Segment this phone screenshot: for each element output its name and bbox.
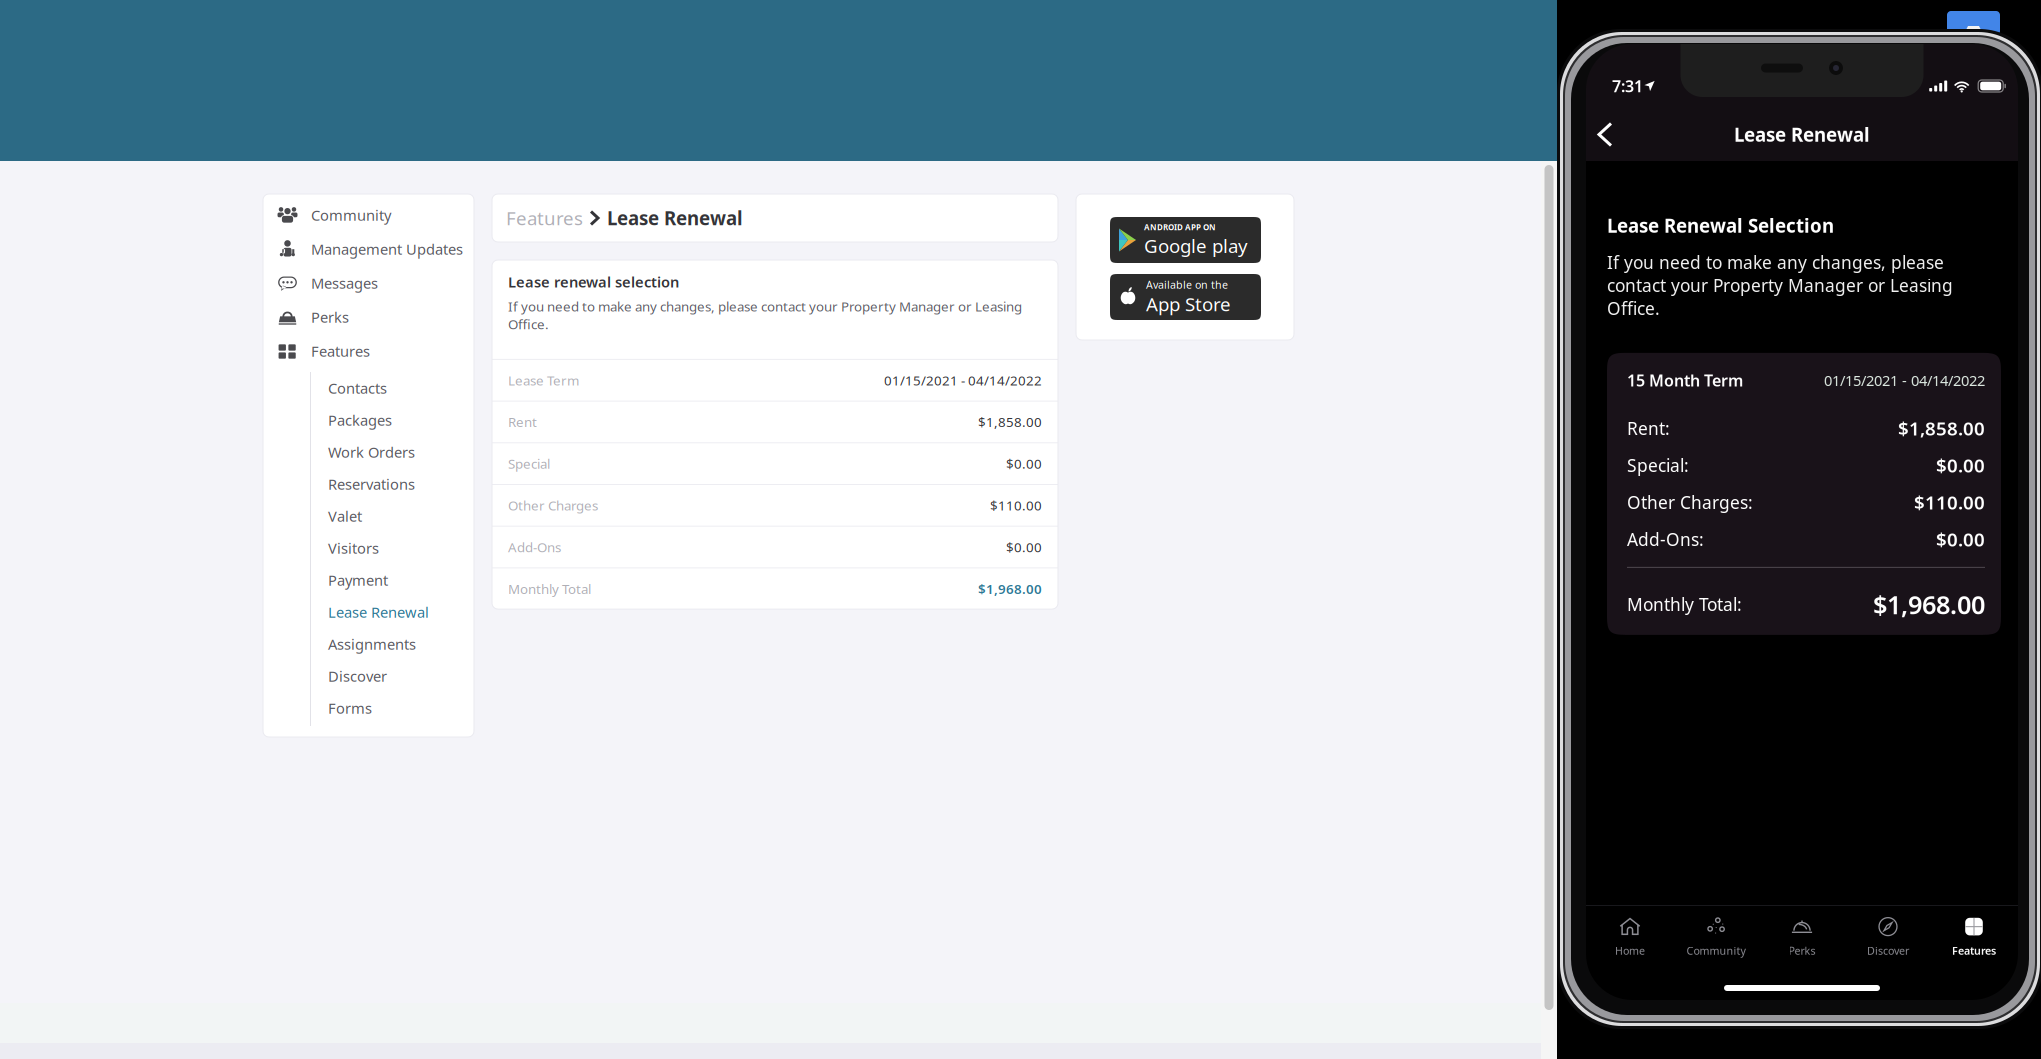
button[interactable]: Back [1586, 108, 1630, 161]
button[interactable]: Community [263, 198, 474, 232]
staticText: Lease Term [508, 371, 579, 389]
staticText: Add-Ons: [1627, 528, 1704, 551]
button[interactable]: Visitors [311, 532, 474, 564]
staticText: 7:31 [1612, 75, 1643, 97]
staticText: Lease Renewal Selection [1607, 213, 1834, 238]
staticText: Lease Renewal [328, 602, 429, 622]
staticText: Add-Ons [508, 538, 561, 556]
button[interactable]: Features [263, 334, 474, 368]
staticText: Features [311, 341, 370, 361]
staticText: ANDROID APP ON [1144, 222, 1216, 232]
button[interactable]: Perks [1759, 914, 1845, 960]
button[interactable]: Features [1931, 914, 2017, 960]
button[interactable]: Forms [311, 692, 474, 724]
staticText: Google play [1144, 233, 1248, 258]
staticText: Forms [328, 698, 372, 718]
staticText: $0.00 [1936, 527, 1985, 552]
staticText: Community [1686, 944, 1745, 958]
staticText: Monthly Total: [1627, 593, 1742, 616]
staticText: $110.00 [990, 496, 1042, 514]
staticText: Monthly Total [508, 580, 591, 598]
button[interactable]: Community [1673, 914, 1759, 960]
staticText: If you need to make any changes, please … [1607, 251, 1953, 320]
staticText: Contacts [328, 378, 387, 398]
button[interactable]: Perks [263, 300, 474, 334]
staticText: Special [508, 455, 550, 472]
button[interactable]: Messages [263, 266, 474, 300]
button[interactable]: Management Updates [263, 232, 474, 266]
staticText: Available on the [1146, 277, 1228, 292]
staticText: Assignments [328, 634, 416, 654]
staticText: $1,968.00 [978, 580, 1042, 598]
staticText: $110.00 [1914, 490, 1985, 515]
staticText: Valet [328, 506, 362, 526]
staticText: Special: [1627, 454, 1689, 477]
button[interactable]: Valet [311, 500, 474, 532]
staticText: If you need to make any changes, please … [508, 297, 1022, 333]
staticText: Lease Renewal [1734, 122, 1870, 147]
button[interactable]: Reservations [311, 468, 474, 500]
button[interactable]: Lease Renewal [311, 596, 474, 628]
staticText: Lease renewal selection [508, 272, 679, 291]
staticText: Payment [328, 570, 388, 590]
staticText: 01/15/2021 - 04/14/2022 [1824, 371, 1985, 390]
staticText: Community [311, 205, 391, 225]
button[interactable]: Work Orders [311, 436, 474, 468]
staticText: Lease Renewal [607, 206, 743, 230]
button[interactable]: Discover [1845, 914, 1931, 960]
button[interactable]: Payment [311, 564, 474, 596]
staticText: Perks [311, 307, 349, 327]
staticText: Home [1615, 944, 1645, 958]
button[interactable]: Home [1587, 914, 1673, 960]
staticText: 15 Month Term [1627, 370, 1743, 391]
button[interactable]: ANDROID APP ON [1110, 217, 1261, 263]
staticText: Messages [311, 273, 378, 293]
staticText: $1,858.00 [1898, 416, 1985, 441]
staticText: Reservations [328, 474, 415, 494]
staticText: Other Charges [508, 496, 598, 514]
staticText: $1,968.00 [1873, 587, 1985, 621]
button[interactable]: Features [506, 206, 583, 230]
staticText: Other Charges: [1627, 491, 1753, 514]
staticText: Discover [1867, 944, 1909, 958]
staticText: $0.00 [1006, 455, 1042, 472]
button[interactable]: Packages [311, 404, 474, 436]
staticText: Packages [328, 410, 392, 430]
staticText: Perks [1788, 944, 1815, 958]
staticText: Discover [328, 666, 387, 686]
button[interactable]: Discover [311, 660, 474, 692]
staticText: Rent: [1627, 417, 1670, 440]
staticText: Features [1952, 944, 1996, 958]
staticText: 01/15/2021 - 04/14/2022 [884, 371, 1042, 389]
staticText: $0.00 [1006, 538, 1042, 556]
staticText: $0.00 [1936, 453, 1985, 478]
staticText: App Store [1146, 292, 1231, 316]
button[interactable]: Available on the [1110, 274, 1261, 320]
button[interactable]: Contacts [311, 372, 474, 404]
staticText: Visitors [328, 538, 379, 558]
staticText: $1,858.00 [978, 413, 1042, 431]
staticText: Rent [508, 413, 537, 431]
button[interactable]: Assignments [311, 628, 474, 660]
staticText: Management Updates [311, 239, 463, 259]
staticText: Features [506, 206, 583, 230]
staticText: Work Orders [328, 442, 415, 462]
